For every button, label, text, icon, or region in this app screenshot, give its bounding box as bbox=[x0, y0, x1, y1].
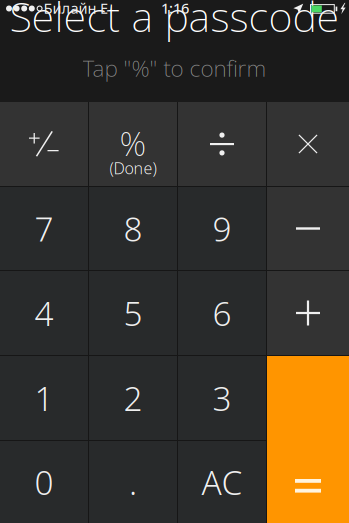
button[interactable]: 6 bbox=[178, 271, 266, 355]
button[interactable]: % bbox=[89, 102, 177, 186]
button[interactable]: 8 bbox=[89, 187, 177, 270]
staticText: E bbox=[100, 0, 108, 18]
staticText: Билайн bbox=[43, 0, 96, 18]
button[interactable]: Plus minus bbox=[0, 102, 88, 186]
button[interactable]: 4 bbox=[0, 271, 88, 355]
staticText: 7 bbox=[34, 206, 53, 251]
button[interactable]: 3 bbox=[178, 356, 266, 440]
staticText: 1:16 bbox=[161, 0, 189, 18]
button[interactable]: Plus bbox=[267, 271, 349, 355]
staticText: 3 bbox=[212, 376, 231, 420]
staticText: 0 bbox=[34, 460, 53, 504]
staticText: Tap "%" to confirm bbox=[82, 53, 266, 83]
button[interactable]: 5 bbox=[89, 271, 177, 355]
staticText: 4 bbox=[34, 291, 53, 335]
button[interactable]: AC bbox=[178, 441, 266, 523]
button[interactable]: 7 bbox=[0, 187, 88, 270]
staticText: 5 bbox=[123, 291, 142, 335]
button[interactable]: Divide bbox=[178, 102, 266, 186]
staticText: Select a passcode bbox=[9, 0, 339, 43]
staticText: 9 bbox=[212, 206, 231, 251]
button[interactable]: 1 bbox=[0, 356, 88, 440]
button[interactable]: Minus bbox=[267, 187, 349, 270]
staticText: 1 bbox=[34, 376, 53, 420]
staticText: % bbox=[119, 121, 146, 165]
button[interactable]: 9 bbox=[178, 187, 266, 270]
staticText: 6 bbox=[212, 291, 231, 335]
button[interactable]: Multiply bbox=[267, 102, 349, 186]
staticText: AC bbox=[201, 460, 242, 504]
staticText: 2 bbox=[123, 376, 142, 420]
staticText: (Done) bbox=[109, 157, 156, 179]
button[interactable]: 2 bbox=[89, 356, 177, 440]
staticText: . bbox=[129, 460, 137, 504]
button[interactable]: Equals bbox=[267, 356, 349, 523]
staticText: 8 bbox=[123, 206, 142, 251]
button[interactable]: 0 bbox=[0, 441, 88, 523]
button[interactable]: . bbox=[89, 441, 177, 523]
